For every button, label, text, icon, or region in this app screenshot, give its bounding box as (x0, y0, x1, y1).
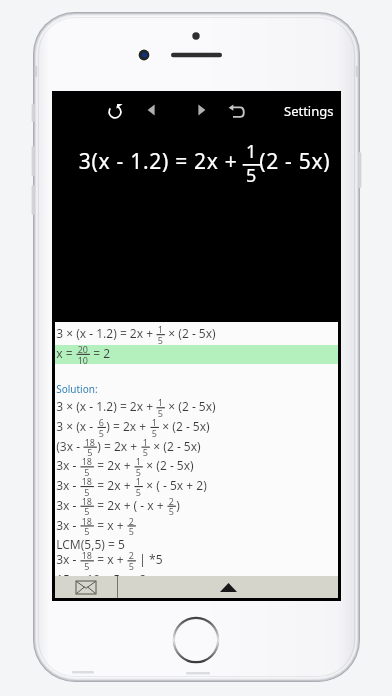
button[interactable] (55, 554, 338, 573)
button[interactable]: Undo (224, 100, 248, 124)
button[interactable]: Mail (55, 576, 117, 598)
button[interactable] (55, 345, 338, 364)
button[interactable] (55, 516, 338, 535)
staticText: Settings (284, 102, 334, 120)
button[interactable] (55, 497, 338, 516)
button[interactable] (55, 535, 338, 554)
button[interactable]: Previous (140, 99, 162, 121)
button[interactable] (55, 327, 338, 345)
button[interactable]: Next (191, 99, 213, 121)
button[interactable] (55, 478, 338, 497)
button[interactable]: Settings (278, 91, 340, 130)
button[interactable]: Expand (118, 576, 338, 598)
button[interactable] (55, 421, 338, 440)
button[interactable] (55, 402, 338, 421)
button[interactable] (55, 573, 338, 592)
button[interactable] (55, 440, 338, 459)
button[interactable] (55, 459, 338, 478)
button[interactable]: Reload (103, 100, 127, 124)
